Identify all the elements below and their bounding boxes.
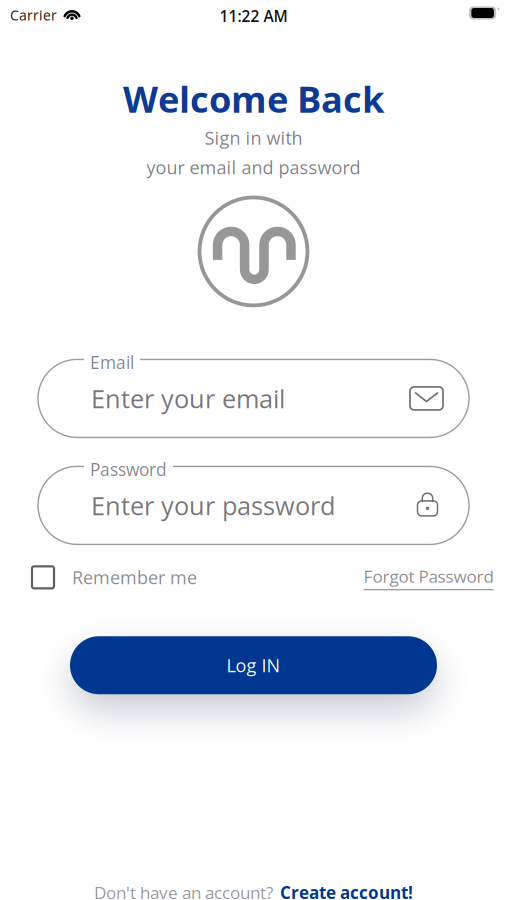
- staticText: Carrier: [10, 5, 57, 25]
- button[interactable]: Log IN: [70, 636, 437, 694]
- button[interactable]: Forgot Password: [363, 564, 493, 590]
- staticText: Sign in with: [204, 125, 302, 150]
- staticText: your email and password: [146, 155, 360, 179]
- staticText: 11:22 AM: [219, 5, 287, 27]
- staticText: Don't have an account?: [94, 881, 273, 900]
- button[interactable]: Remember me: [32, 565, 197, 590]
- staticText: Remember me: [72, 565, 197, 590]
- staticText: Create account!: [280, 881, 413, 900]
- button[interactable]: Don't have an account?: [94, 881, 413, 900]
- staticText: Forgot Password: [363, 564, 493, 588]
- staticText: Enter your email: [91, 381, 285, 416]
- staticText: Password: [90, 457, 167, 481]
- staticText: Welcome Back: [123, 74, 384, 123]
- staticText: Email: [90, 350, 134, 374]
- staticText: Enter your password: [91, 488, 335, 523]
- staticText: Log IN: [226, 653, 280, 677]
